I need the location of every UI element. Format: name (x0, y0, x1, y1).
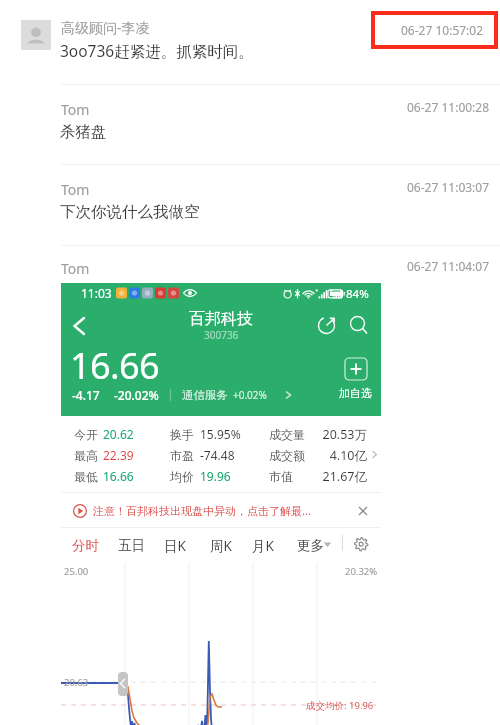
staticText: 今开 (74, 427, 98, 442)
button[interactable]: Back (71, 315, 93, 337)
button[interactable]: 日K (164, 537, 186, 555)
button[interactable]: Settings (354, 537, 369, 552)
staticText: 成交均价: 19.96 (306, 699, 374, 712)
button[interactable]: 五日 (118, 537, 145, 554)
staticText: 20.62 (103, 426, 134, 442)
button[interactable]: 月K (252, 537, 274, 555)
staticText: 20.32% (345, 565, 378, 578)
staticText: 06-27 11:00:28 (407, 99, 490, 115)
staticText: 市盈 (170, 448, 194, 463)
staticText: 22.39 (103, 447, 134, 463)
staticText: Tom (61, 100, 90, 119)
staticText: 五日 (118, 537, 145, 554)
staticText: 月K (252, 537, 274, 555)
staticText: 19.96 (200, 468, 231, 484)
staticText: 06-27 11:03:07 (407, 179, 490, 195)
staticText: 注意！百邦科技出现盘中异动，点击了解最... (93, 503, 311, 518)
staticText: 15.95% (200, 426, 241, 442)
staticText: 换手 (170, 427, 194, 442)
staticText: 高级顾问-李凌 (61, 18, 150, 37)
staticText: 百邦科技 (189, 309, 253, 329)
button[interactable]: Close (356, 504, 370, 518)
staticText: 成交额 (269, 448, 305, 463)
staticText: 市值 (269, 469, 293, 484)
staticText: 杀猪盘 (60, 122, 107, 142)
staticText: Tom (61, 259, 90, 278)
staticText: +0.02% (233, 388, 267, 402)
staticText: 06-27 11:04:07 (407, 258, 490, 274)
staticText: Tom (61, 180, 90, 199)
staticText: 300736 (204, 328, 239, 342)
staticText: 84% (346, 286, 369, 302)
staticText: 4.10亿 (306, 447, 367, 464)
staticText: 通信服务 (182, 388, 228, 402)
staticText: 最高 (74, 448, 98, 463)
button[interactable]: 注意！百邦科技出现盘中异动，点击了解最... (73, 493, 370, 528)
staticText: 11:03 (81, 285, 112, 301)
staticText: 分时 (72, 537, 99, 554)
staticText: 日K (164, 537, 186, 555)
button[interactable]: Share (317, 315, 337, 335)
button[interactable]: 分时 (72, 537, 99, 566)
button[interactable]: 加自选 (339, 357, 372, 400)
staticText: 更多 (297, 537, 324, 554)
button[interactable]: 更多 (297, 537, 324, 554)
button[interactable]: 06-27 10:57:02 (371, 11, 498, 49)
button[interactable]: 周K (210, 537, 232, 555)
staticText: 成交量 (269, 427, 305, 442)
staticText: -74.48 (200, 447, 235, 463)
staticText: 16.66 (103, 468, 134, 484)
staticText: 20.53万 (306, 426, 367, 443)
staticText: -4.17 (72, 387, 100, 403)
staticText: 最低 (74, 469, 98, 484)
staticText: 加自选 (339, 386, 372, 400)
staticText: 20.63 (64, 676, 89, 689)
staticText: 25.00 (64, 565, 89, 578)
staticText: 16.66 (70, 341, 160, 390)
staticText: -20.02% (114, 387, 159, 403)
staticText: 21.67亿 (306, 468, 367, 485)
staticText: 周K (210, 537, 232, 555)
staticText: 3oo736赶紧进。抓紧时间。 (60, 40, 254, 61)
staticText: 均价 (170, 469, 194, 484)
staticText: 下次你说什么我做空 (60, 202, 200, 222)
staticText: 06-27 10:57:02 (401, 22, 484, 38)
button[interactable]: Search (349, 315, 369, 335)
